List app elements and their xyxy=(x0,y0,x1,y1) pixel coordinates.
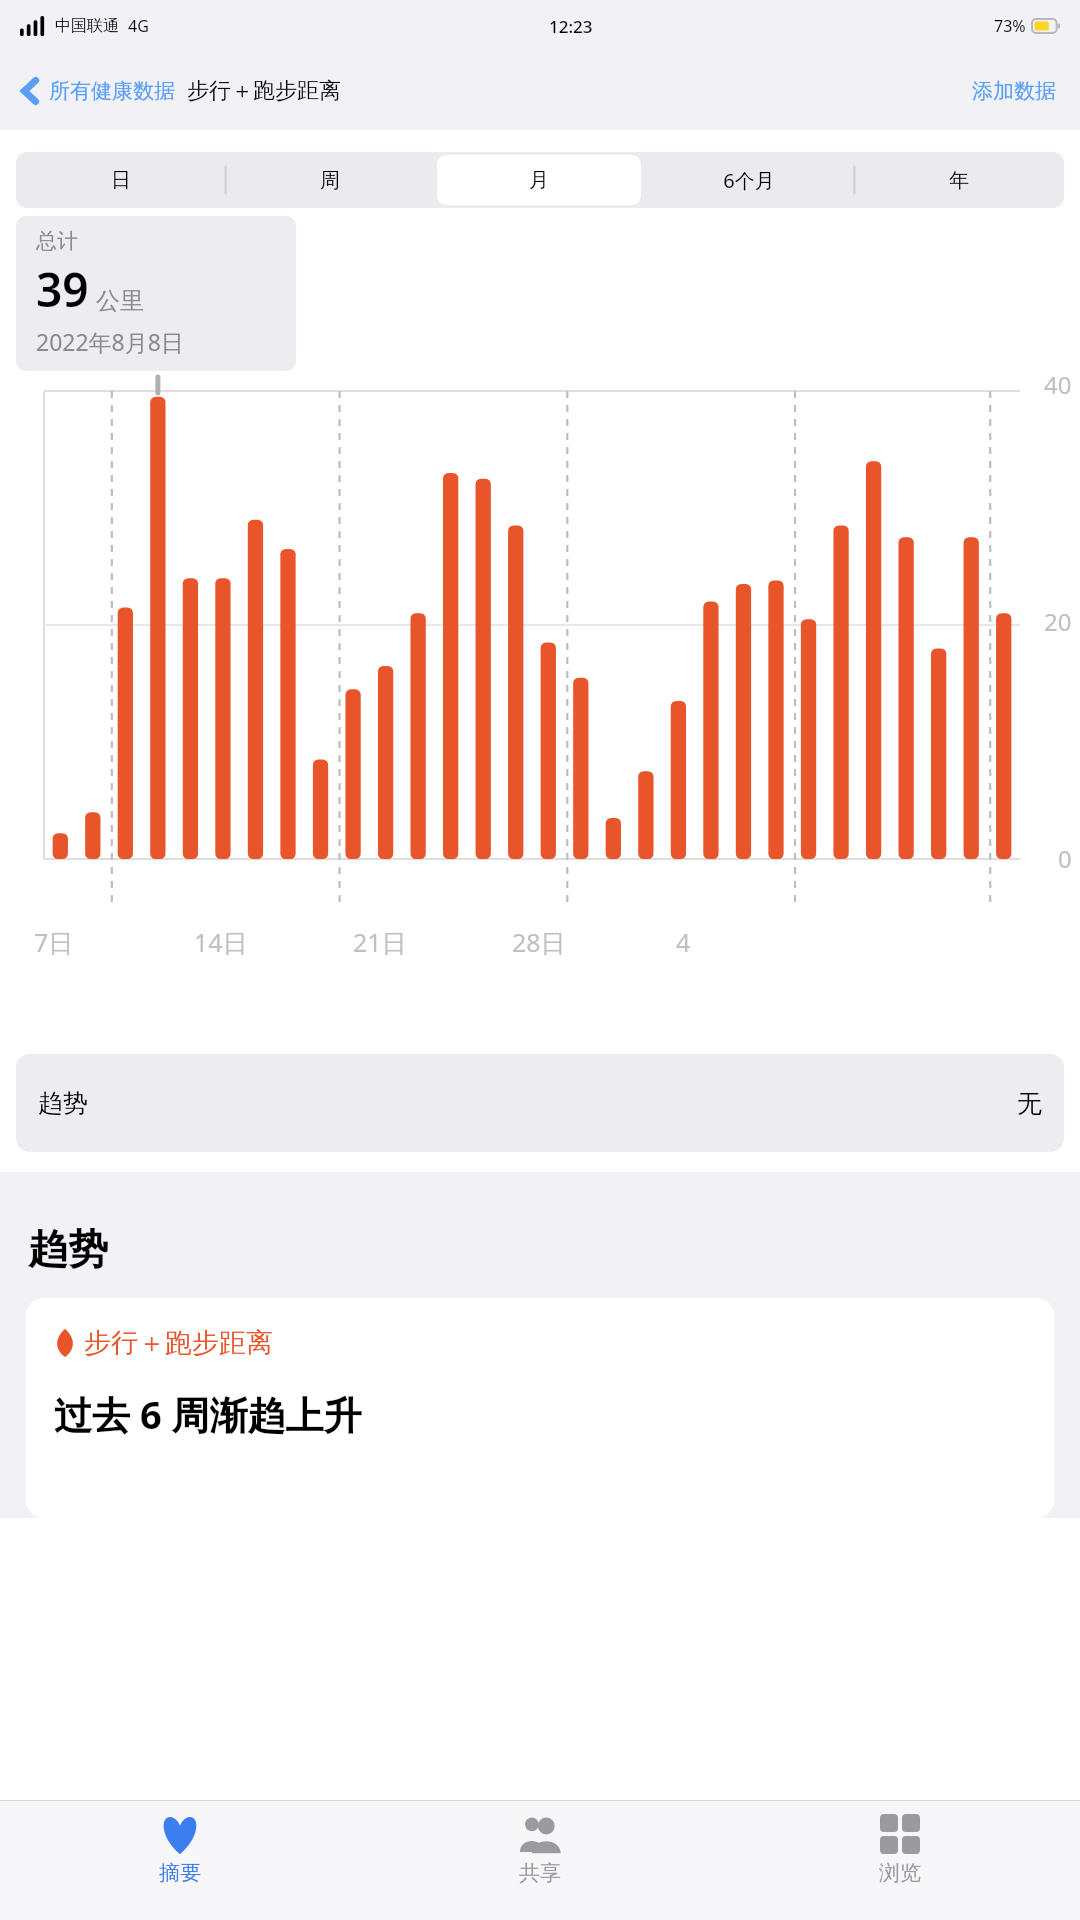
staticText: 浏览 xyxy=(879,1860,921,1886)
button[interactable]: 步行＋跑步距离 xyxy=(26,1298,1054,1518)
staticText: 73% xyxy=(994,15,1026,37)
staticText: 6个月 xyxy=(723,167,775,194)
button[interactable]: 趋势 xyxy=(16,1054,1064,1152)
staticText: 趋势 xyxy=(28,1224,108,1274)
staticText: 无 xyxy=(1017,1088,1042,1119)
button[interactable]: 共享 xyxy=(360,1801,720,1920)
staticText: 14日 xyxy=(194,925,248,959)
button[interactable]: 6个月 xyxy=(647,155,851,205)
button[interactable]: 月 xyxy=(437,155,641,205)
staticText: 公里 xyxy=(96,286,144,316)
staticText: 添加数据 xyxy=(972,78,1056,104)
button[interactable]: 摘要 xyxy=(0,1801,360,1920)
staticText: 日 xyxy=(111,168,131,193)
staticText: 4G xyxy=(128,15,149,37)
staticText: 趋势 xyxy=(38,1088,88,1119)
staticText: 摘要 xyxy=(159,1860,201,1886)
staticText: 40 xyxy=(1044,368,1072,401)
staticText: 39 xyxy=(36,258,89,321)
staticText: 步行＋跑步距离 xyxy=(187,77,341,105)
staticText: 中国联通 xyxy=(55,16,119,36)
staticText: 总计 xyxy=(36,228,78,254)
staticText: 年 xyxy=(949,168,969,193)
staticText: 2022年8月8日 xyxy=(36,326,184,357)
staticText: 月 xyxy=(529,168,549,193)
staticText: 0 xyxy=(1058,842,1072,875)
staticText: 7日 xyxy=(34,925,74,959)
staticText: 步行＋跑步距离 xyxy=(84,1326,273,1360)
button[interactable]: 添加数据 xyxy=(968,74,1060,108)
staticText: 20 xyxy=(1044,605,1072,638)
button[interactable]: 周 xyxy=(228,155,431,205)
staticText: 4 xyxy=(676,925,691,959)
staticText: 共享 xyxy=(519,1860,561,1886)
button[interactable]: 日 xyxy=(19,155,222,205)
staticText: 周 xyxy=(320,168,340,193)
button[interactable]: 年 xyxy=(857,155,1061,205)
staticText: 12:23 xyxy=(549,15,593,38)
button[interactable]: 所有健康数据 xyxy=(20,75,183,107)
staticText: 所有健康数据 xyxy=(49,78,175,104)
staticText: 21日 xyxy=(353,925,407,959)
staticText: 28日 xyxy=(512,925,566,959)
button[interactable]: 浏览 xyxy=(720,1801,1080,1920)
staticText: 过去 6 周渐趋上升 xyxy=(54,1388,362,1440)
